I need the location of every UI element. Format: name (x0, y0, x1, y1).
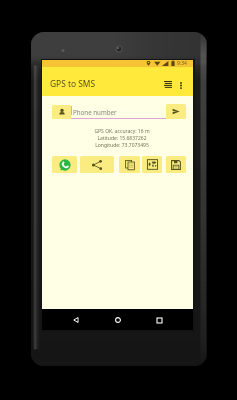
button[interactable]: Show on map (142, 156, 162, 173)
button[interactable]: Pick contact (52, 105, 71, 119)
staticText: GPS to SMS (50, 78, 96, 89)
button[interactable]: Copy (119, 156, 140, 173)
staticText: Longitude: 73.7073495 (95, 142, 149, 149)
button[interactable]: Home (110, 312, 126, 328)
staticText: 9:34 (177, 60, 187, 67)
button[interactable]: Send SMS (166, 104, 186, 119)
button[interactable]: Send via WhatsApp (52, 156, 77, 173)
button[interactable]: Share (80, 156, 114, 173)
button[interactable]: More options (176, 80, 186, 90)
staticText: Phone number (73, 108, 117, 116)
button[interactable]: Save (166, 156, 186, 173)
button[interactable]: Menu list (162, 79, 173, 90)
button[interactable]: Recent apps (151, 312, 167, 328)
staticText: GPS OK, accuracy: 16 m (94, 128, 150, 135)
button[interactable]: Back (68, 312, 84, 328)
staticText: Latitude: 15.6837262 (97, 135, 147, 142)
